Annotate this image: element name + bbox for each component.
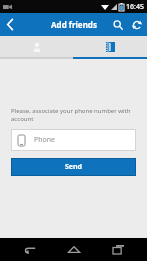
staticText: Phone [34, 135, 56, 145]
staticText: Add friends [51, 19, 97, 30]
button[interactable]: Home [58, 238, 90, 261]
button[interactable]: Search [108, 13, 127, 36]
staticText: 16:45 [126, 2, 144, 12]
button[interactable]: Back [13, 238, 45, 261]
button[interactable]: Refresh [127, 13, 147, 36]
staticText: Send [65, 162, 83, 172]
staticText: Please, associate your phone number with… [11, 107, 136, 123]
button[interactable]: Send [11, 158, 136, 176]
button[interactable]: Back [0, 13, 20, 36]
button[interactable]: Recents [102, 238, 134, 261]
button[interactable]: Phone [11, 129, 136, 151]
button[interactable]: Contacts tab [73, 36, 147, 57]
